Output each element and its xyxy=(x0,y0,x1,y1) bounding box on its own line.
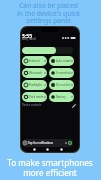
staticText: Do not dist xyxy=(56,83,71,87)
staticText: Internet xyxy=(29,59,40,63)
button[interactable]: Auto rotate xyxy=(49,56,74,66)
staticText: Battery xyxy=(56,95,66,99)
staticText: Can also be placed in the device's quick… xyxy=(17,1,80,25)
staticText: Tap for notifications xyxy=(28,141,54,145)
button[interactable]: Screenshot xyxy=(49,68,74,78)
button[interactable]: Home xyxy=(46,148,49,151)
button[interactable]: Flashlight xyxy=(22,80,47,90)
staticText: Mon, Nov 6 xyxy=(22,37,36,41)
button[interactable]: Settings xyxy=(68,141,72,145)
staticText: 5:55 xyxy=(22,33,32,40)
button[interactable]: Internet xyxy=(22,56,47,66)
button[interactable]: Bluetooth xyxy=(22,68,47,78)
button[interactable]: Recents xyxy=(60,148,63,151)
staticText: Dark mode xyxy=(29,95,44,99)
staticText: To make smartphones more efficient xyxy=(7,157,93,178)
staticText: Bluetooth xyxy=(29,71,42,75)
button[interactable]: Dark mode xyxy=(22,92,47,102)
staticText: Device controls xyxy=(22,103,42,107)
button[interactable] xyxy=(22,47,73,54)
button[interactable]: Tap for notifications xyxy=(22,139,73,147)
button[interactable]: Do not dist xyxy=(49,80,74,90)
button[interactable]: Edit tiles xyxy=(72,104,76,108)
staticText: Flashlight xyxy=(29,83,42,87)
button[interactable]: Back xyxy=(33,148,36,151)
staticText: Screenshot xyxy=(56,71,71,75)
staticText: Auto rotate xyxy=(56,59,71,63)
button[interactable]: Battery xyxy=(49,92,74,102)
